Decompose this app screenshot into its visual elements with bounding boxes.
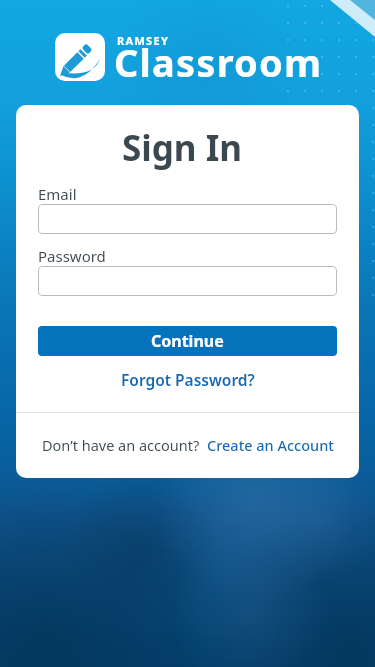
staticText: RAMSEY	[117, 33, 170, 48]
button[interactable]	[38, 266, 337, 296]
staticText: Password	[38, 246, 106, 266]
button[interactable]	[38, 204, 337, 234]
staticText: Create an Account	[207, 435, 334, 455]
staticText: Email	[38, 184, 77, 204]
button[interactable]: Continue	[38, 326, 337, 356]
staticText: Classroom	[114, 36, 323, 88]
staticText: Sign In	[122, 124, 243, 172]
staticText: Continue	[151, 330, 224, 352]
button[interactable]: Forgot Password?	[121, 369, 255, 390]
staticText: Don’t have an account?	[42, 435, 200, 455]
button[interactable]: Create an Account	[207, 435, 334, 455]
staticText: Forgot Password?	[121, 369, 255, 390]
